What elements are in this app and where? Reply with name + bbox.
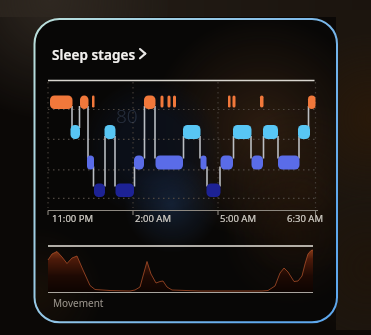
staticText: Sleep stages <box>52 46 136 64</box>
staticText: 11:00 PM <box>52 212 94 225</box>
staticText: 2:00 AM <box>135 212 172 225</box>
button[interactable] <box>48 38 154 64</box>
staticText: 6:30 AM <box>287 212 324 225</box>
staticText: Movement <box>53 296 104 310</box>
staticText: 80 <box>116 103 138 129</box>
staticText: 5:00 AM <box>220 212 257 225</box>
